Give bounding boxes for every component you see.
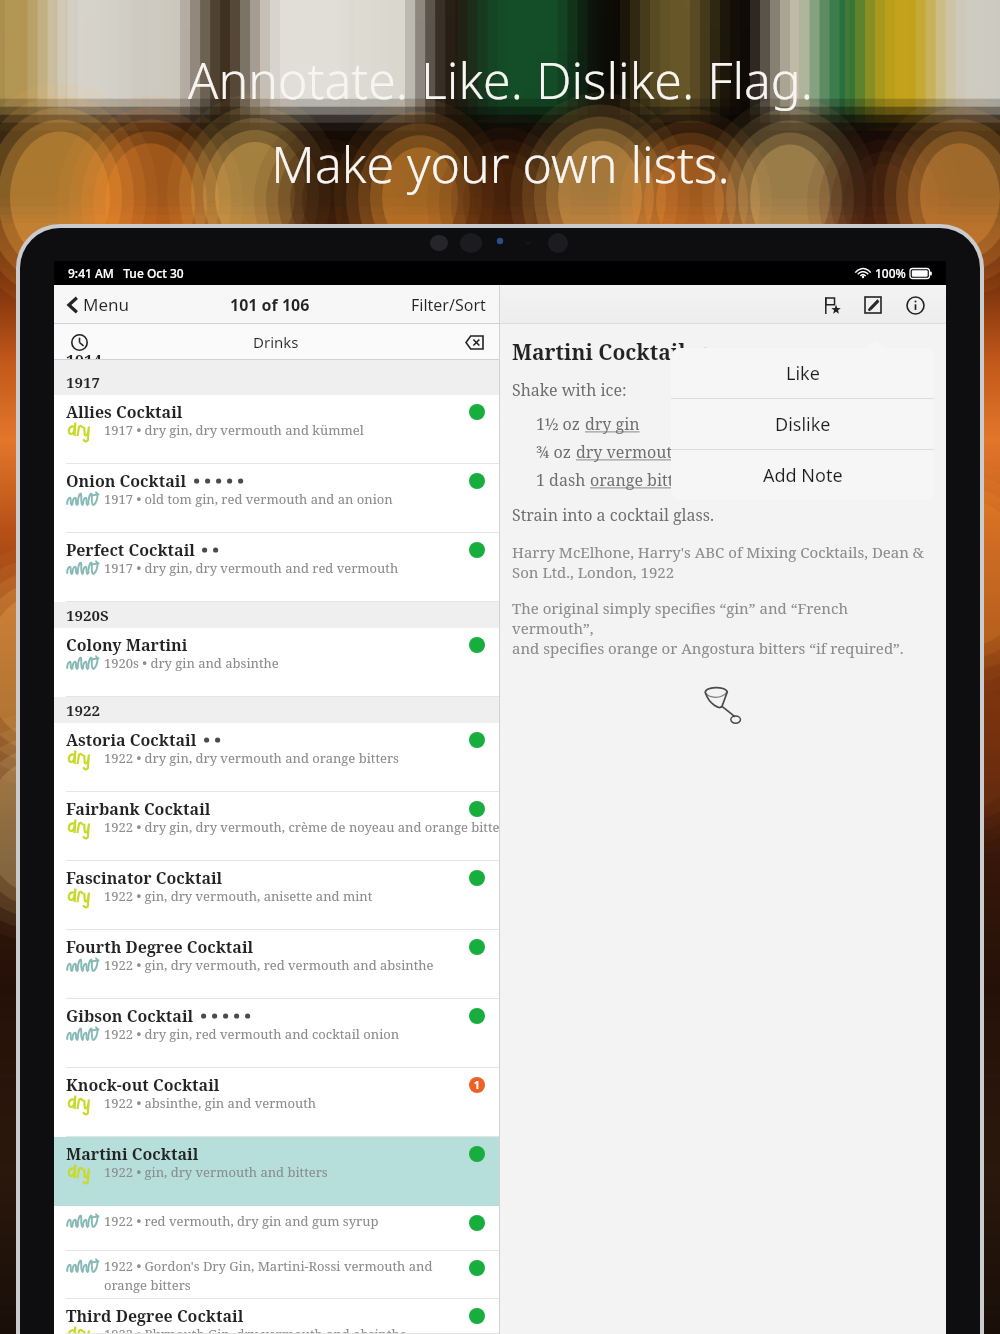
staticText: Perfect Cocktail — [66, 539, 195, 561]
staticText: Drinks — [253, 332, 299, 352]
staticText: Harry McElhone, Harry's ABC of Mixing Co… — [512, 542, 924, 562]
staticText: 1917 • dry gin, dry vermouth and kümmel — [104, 421, 364, 439]
staticText: 1 dash — [536, 469, 590, 491]
staticText: Astoria Cocktail — [66, 729, 197, 751]
staticText: 1922 • dry gin, dry vermouth, crème de n… — [104, 818, 512, 836]
staticText: 1 — [474, 1078, 480, 1092]
button[interactable]: Recents — [68, 331, 90, 353]
button[interactable]: Dislike — [671, 399, 934, 449]
button[interactable]: Fourth Degree Cocktail — [54, 930, 499, 999]
staticText: 1917 — [66, 372, 100, 392]
staticText: 1922 • red vermouth, dry gin and gum syr… — [104, 1212, 379, 1230]
button[interactable]: Menu — [65, 289, 132, 320]
staticText: Strain into a cocktail glass. — [512, 504, 715, 526]
staticText: dry vermouth — [576, 441, 683, 463]
button[interactable]: Gibson Cocktail — [54, 999, 499, 1068]
staticText: Allies Cocktail — [66, 401, 183, 423]
staticText: orange bitters — [590, 469, 697, 491]
staticText: 1920S — [66, 605, 109, 625]
button[interactable]: 1922 • Gordon's Dry Gin, Martini-Rossi v… — [54, 1251, 499, 1299]
button[interactable]: Edit — [858, 290, 888, 320]
button[interactable]: Martini Cocktail — [54, 1137, 499, 1206]
button[interactable]: Third Degree Cocktail — [54, 1299, 499, 1334]
staticText: Martini Cocktail — [66, 1143, 199, 1165]
staticText: Like — [786, 361, 820, 386]
staticText: ¾ oz — [536, 441, 576, 463]
staticText: 1920s • dry gin and absinthe — [104, 654, 279, 672]
button[interactable]: 1922 • red vermouth, dry gin and gum syr… — [54, 1206, 499, 1251]
button[interactable]: Add Note — [671, 450, 934, 500]
button[interactable]: Perfect Cocktail — [54, 533, 499, 602]
staticText: Fairbank Cocktail — [66, 798, 211, 820]
staticText: Make your own lists. — [271, 130, 730, 198]
staticText: The original simply specifies “gin” and … — [512, 598, 932, 638]
staticText: Angostura bitters — [723, 469, 856, 491]
button[interactable]: Flag — [816, 290, 846, 320]
staticText: Fourth Degree Cocktail — [66, 936, 254, 958]
staticText: Shake with ice: — [512, 379, 627, 401]
staticText: 1922 — [66, 700, 100, 720]
staticText: Fascinator Cocktail — [66, 867, 223, 889]
staticText: orange bitters — [104, 1276, 191, 1294]
button[interactable]: Colony Martini — [54, 628, 499, 697]
staticText: 1922 • gin, dry vermouth, anisette and m… — [104, 887, 373, 905]
staticText: 1917 • dry gin, dry vermouth and red ver… — [104, 559, 399, 577]
button[interactable]: Allies Cocktail — [54, 395, 499, 464]
button[interactable]: Info — [900, 290, 930, 320]
staticText: 9:41 AM Tue Oct 30 — [68, 265, 184, 281]
staticText: 1922 • gin, dry vermouth and bitters — [104, 1163, 328, 1181]
staticText: Onion Cocktail — [66, 470, 187, 492]
staticText: Gibson Cocktail — [66, 1005, 194, 1027]
button[interactable]: Astoria Cocktail — [54, 723, 499, 792]
staticText: 1922 • dry gin, dry vermouth and orange … — [104, 749, 399, 767]
button[interactable]: Filter/Sort — [409, 290, 488, 320]
staticText: Colony Martini — [66, 634, 188, 656]
staticText: Add Note — [763, 463, 843, 488]
staticText: Annotate. Like. Dislike. Flag. — [188, 46, 813, 114]
staticText: 1922 • dry gin, red vermouth and cocktai… — [104, 1025, 400, 1043]
button[interactable]: Like — [671, 348, 934, 398]
button[interactable]: Fairbank Cocktail — [54, 792, 499, 861]
staticText: 101 of 106 — [230, 294, 310, 316]
staticText: Martini Cocktail — [512, 338, 686, 367]
staticText: Filter/Sort — [411, 294, 486, 316]
staticText: 100% — [875, 265, 906, 281]
staticText: Menu — [83, 293, 130, 316]
staticText: Son Ltd., London, 1922 — [512, 562, 675, 582]
staticText: Dislike — [775, 412, 831, 437]
staticText: 1922 • Gordon's Dry Gin, Martini-Rossi v… — [104, 1257, 433, 1275]
button[interactable]: Clear — [463, 331, 485, 353]
button[interactable]: Onion Cocktail — [54, 464, 499, 533]
button[interactable]: Knock-out Cocktail — [54, 1068, 499, 1137]
staticText: and specifies orange or Angostura bitter… — [512, 638, 904, 658]
staticText: 1922 • gin, dry vermouth, red vermouth a… — [104, 956, 434, 974]
staticText: 1917 • old tom gin, red vermouth and an … — [104, 490, 393, 508]
staticText: Knock-out Cocktail — [66, 1074, 220, 1096]
staticText: 1922 • Plymouth Gin, dry vermouth and ab… — [104, 1325, 407, 1334]
staticText: 1922 • absinthe, gin and vermouth — [104, 1094, 317, 1112]
staticText: 1½ oz — [536, 413, 585, 435]
button[interactable]: Fascinator Cocktail — [54, 861, 499, 930]
staticText: Third Degree Cocktail — [66, 1305, 244, 1327]
staticText: dry gin — [585, 413, 640, 435]
staticText: 1914 — [66, 350, 103, 359]
